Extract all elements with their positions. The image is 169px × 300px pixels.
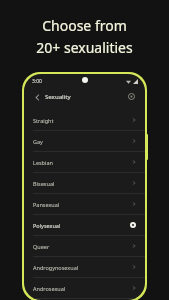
button[interactable]: Straight xyxy=(24,110,145,131)
staticText: 3:00 xyxy=(32,78,42,85)
staticText: Choose from xyxy=(42,16,127,35)
staticText: Bisexual xyxy=(33,180,55,187)
button[interactable]: Polysexual xyxy=(24,215,145,236)
button[interactable]: Androsexual xyxy=(24,278,145,299)
button[interactable]: Pansexual xyxy=(24,194,145,215)
button[interactable]: Bisexual xyxy=(24,173,145,194)
staticText: Androgynosexual xyxy=(33,264,79,271)
staticText: Straight xyxy=(33,117,54,124)
button[interactable]: Asexual xyxy=(24,299,145,300)
staticText: Gay xyxy=(33,138,43,145)
staticText: Polysexual xyxy=(33,222,61,229)
staticText: 20+ sexualities xyxy=(36,38,133,57)
button[interactable]: Androgynosexual xyxy=(24,257,145,278)
button[interactable]: Help xyxy=(126,91,137,102)
staticText: Sexuality xyxy=(45,93,71,101)
staticText: Queer xyxy=(33,243,50,250)
button[interactable]: Gay xyxy=(24,131,145,152)
button[interactable]: Back xyxy=(32,92,42,102)
staticText: Lesbian xyxy=(33,159,53,166)
staticText: Androsexual xyxy=(33,285,66,292)
staticText: Pansexual xyxy=(33,201,60,208)
button[interactable]: Lesbian xyxy=(24,152,145,173)
button[interactable]: Queer xyxy=(24,236,145,257)
staticText: Asexual xyxy=(33,299,53,300)
